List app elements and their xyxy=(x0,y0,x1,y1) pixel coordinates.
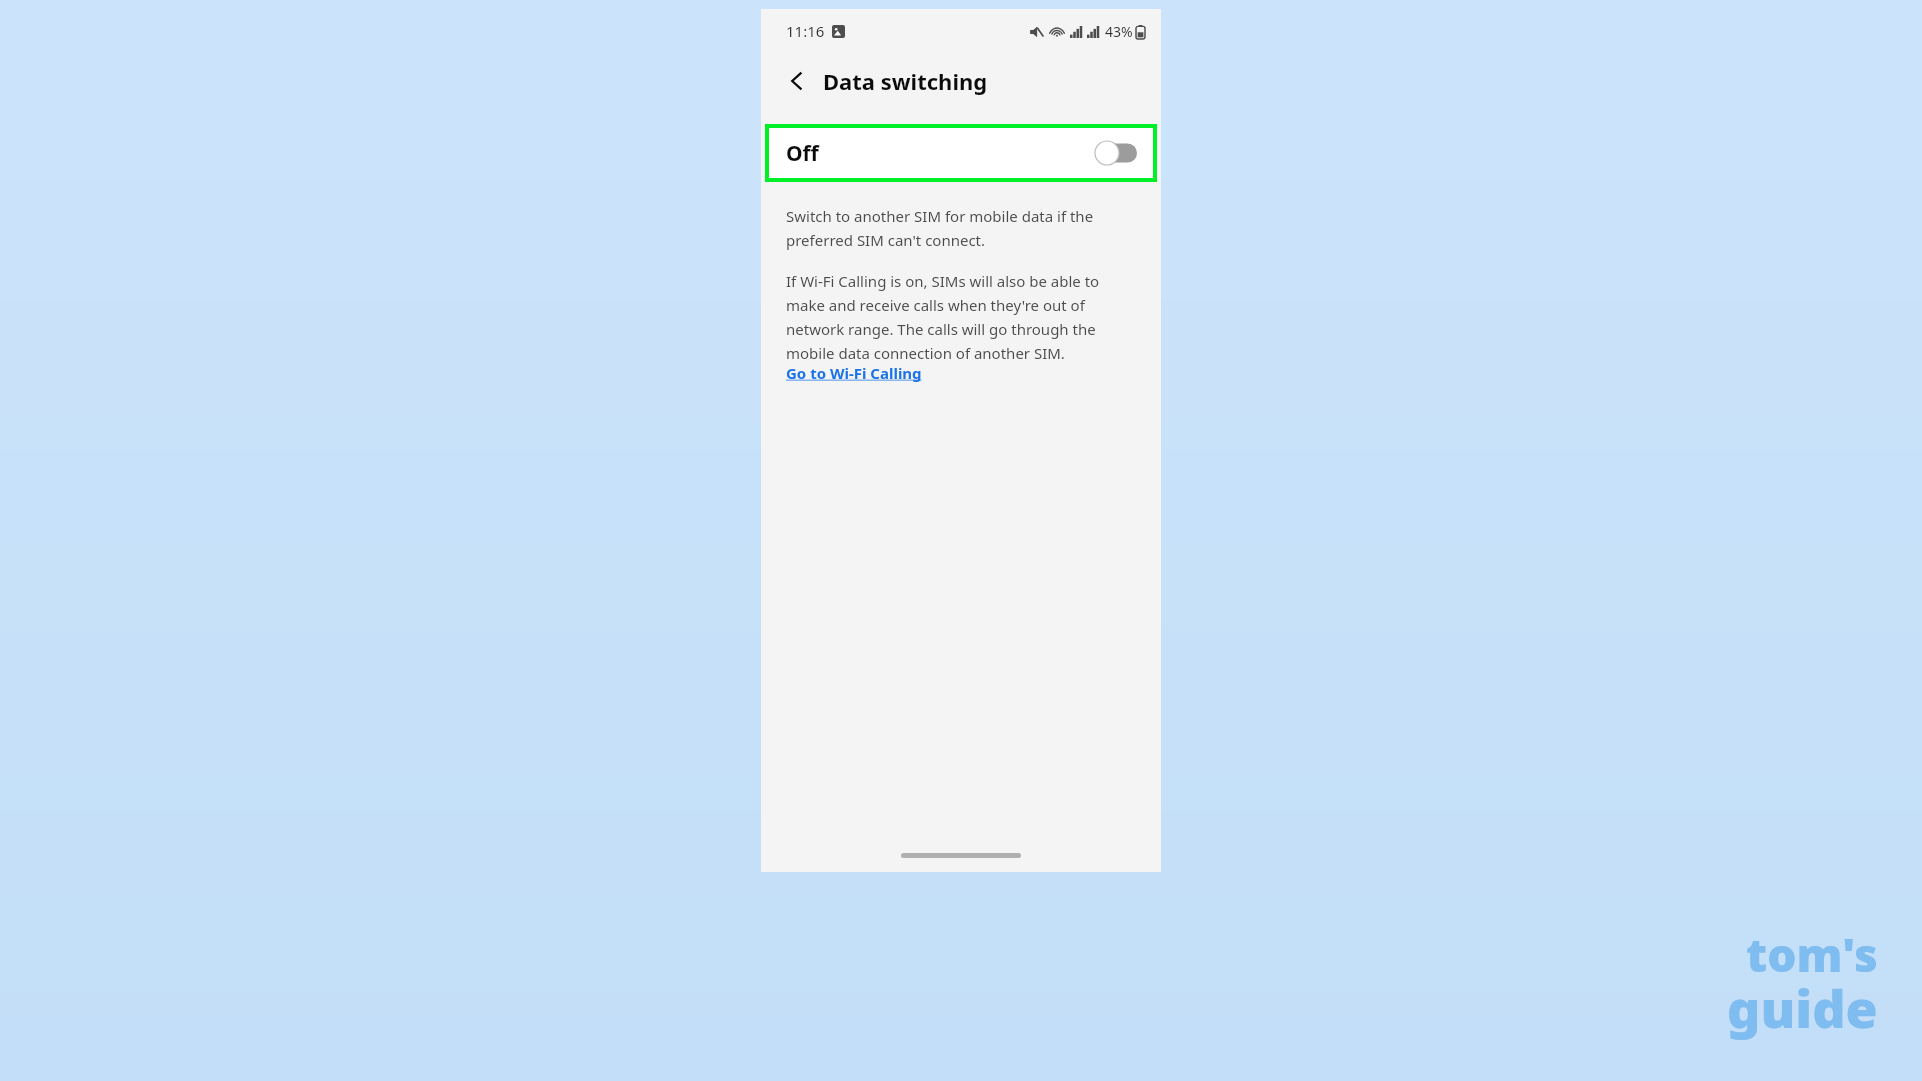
button[interactable]: Go to Wi-Fi Calling xyxy=(786,363,922,383)
button[interactable]: Off xyxy=(765,124,1157,182)
staticText: Go to Wi-Fi Calling xyxy=(786,363,922,383)
staticText: 11:16 xyxy=(786,21,825,41)
staticText: guide xyxy=(1727,972,1878,1043)
staticText: Data switching xyxy=(823,66,988,96)
staticText: tom's xyxy=(1746,923,1878,986)
staticText: 43% xyxy=(1105,22,1133,41)
staticText: If Wi-Fi Calling is on, SIMs will also b… xyxy=(786,271,1136,363)
staticText: Switch to another SIM for mobile data if… xyxy=(786,206,1136,250)
button[interactable]: Back xyxy=(777,61,817,101)
staticText: Off xyxy=(786,139,819,168)
